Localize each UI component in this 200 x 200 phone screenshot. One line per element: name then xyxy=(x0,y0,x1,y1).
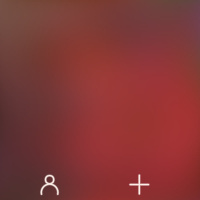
button[interactable]: Contacts xyxy=(26,155,70,196)
button[interactable]: Add xyxy=(118,157,160,198)
